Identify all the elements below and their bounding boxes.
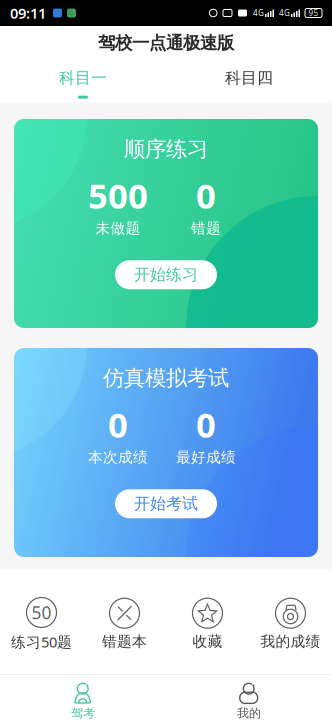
staticText: 驾校一点通极速版 <box>98 32 234 54</box>
staticText: 科目四 <box>225 68 273 88</box>
staticText: 我的成绩 <box>260 633 320 651</box>
staticText: 0 <box>196 401 216 447</box>
staticText: 本次成绩 <box>88 448 148 466</box>
staticText: 科目一 <box>59 68 107 88</box>
staticText: 开始练习 <box>134 265 198 285</box>
staticText: 4G <box>253 8 264 18</box>
staticText: 驾考 <box>71 706 95 720</box>
button[interactable]: 收藏 <box>166 598 249 651</box>
button[interactable]: 开始练习 <box>115 260 217 289</box>
button[interactable]: 错题本 <box>83 598 166 651</box>
staticText: 09:11 <box>10 3 46 23</box>
button[interactable]: 开始考试 <box>115 489 217 518</box>
staticText: 95 <box>308 8 318 18</box>
staticText: 顺序练习 <box>124 136 208 162</box>
staticText: 错题本 <box>102 633 147 651</box>
staticText: 练习50题 <box>11 632 72 651</box>
staticText: 0 <box>196 172 216 218</box>
staticText: 0 <box>108 401 128 447</box>
staticText: 收藏 <box>192 633 222 651</box>
button[interactable]: 我的 <box>166 679 332 720</box>
staticText: 4G <box>279 8 290 18</box>
staticText: 我的 <box>237 706 261 720</box>
staticText: 最好成绩 <box>176 448 236 466</box>
staticText: 未做题 <box>95 219 140 237</box>
button[interactable]: 我的成绩 <box>249 598 332 651</box>
staticText: 500 <box>88 172 148 218</box>
staticText: 50 <box>31 601 51 624</box>
button[interactable]: 科目四 <box>166 60 332 102</box>
button[interactable]: 科目一 <box>0 60 166 102</box>
staticText: 开始考试 <box>134 494 198 514</box>
button[interactable]: 驾考 <box>0 679 166 720</box>
staticText: 仿真模拟考试 <box>103 365 229 391</box>
staticText: 错题 <box>191 219 221 237</box>
button[interactable]: 50 <box>0 597 83 651</box>
